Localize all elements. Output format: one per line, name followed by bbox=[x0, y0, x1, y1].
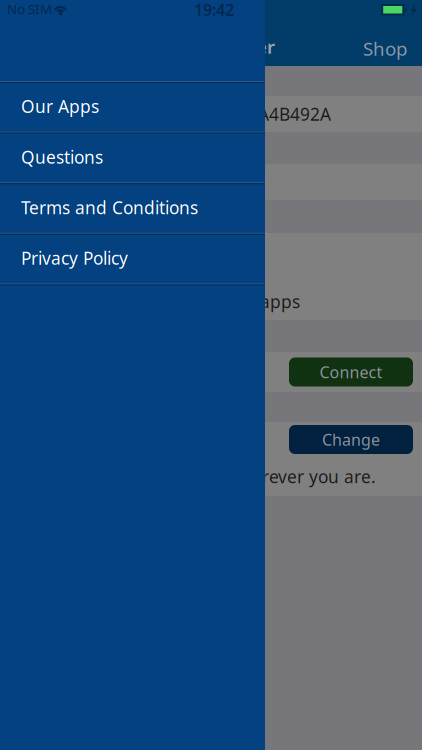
staticText: No SIM bbox=[7, 0, 52, 18]
staticText: Questions bbox=[21, 145, 103, 168]
button[interactable]: Questions bbox=[0, 132, 265, 182]
staticText: Shop bbox=[363, 36, 407, 61]
staticText: Our Apps bbox=[21, 95, 99, 118]
button[interactable]: Terms and Conditions bbox=[0, 182, 265, 233]
button[interactable]: Connect bbox=[289, 357, 413, 386]
staticText: Stay connected wherever you are. bbox=[97, 465, 376, 488]
staticText: Check out our other apps bbox=[92, 290, 300, 313]
staticText: Terms and Conditions bbox=[21, 196, 198, 219]
staticText: Device ID 3F71C9E8A4B492A bbox=[96, 102, 331, 125]
button[interactable]: Privacy Policy bbox=[0, 233, 265, 283]
staticText: Connect bbox=[319, 361, 382, 383]
staticText: Account Manager bbox=[113, 34, 275, 59]
staticText: 19:42 bbox=[194, 0, 234, 20]
staticText: Privacy Policy bbox=[21, 247, 128, 270]
button[interactable]: Shop bbox=[353, 28, 421, 69]
button[interactable]: Change bbox=[289, 425, 413, 454]
button[interactable]: Our Apps bbox=[0, 81, 265, 132]
staticText: Change bbox=[322, 429, 380, 450]
